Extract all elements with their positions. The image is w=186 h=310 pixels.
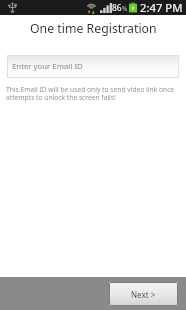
staticText: This Email ID will be used only to send … [6,85,184,102]
staticText: Next > [131,289,156,300]
staticText: Enter your Email ID [12,61,83,72]
staticText: 86 [112,2,122,13]
button[interactable]: Next > [109,282,178,306]
staticText: % [122,4,128,12]
staticText: 2:47 PM [140,0,183,15]
staticText: One time Registration [30,20,157,37]
button[interactable]: Enter your Email ID [7,55,179,78]
other: USB connected [8,2,17,13]
